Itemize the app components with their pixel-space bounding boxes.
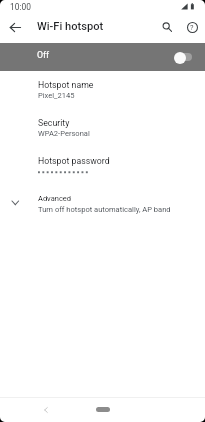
- button[interactable]: Hotspot password: [0, 150, 205, 181]
- staticText: Wi-Fi hotspot: [37, 20, 104, 33]
- staticText: 10:00: [10, 2, 31, 12]
- button[interactable]: Advanced: [0, 188, 205, 219]
- staticText: Security: [38, 118, 70, 128]
- staticText: Turn off hotspot automatically, AP band: [38, 205, 171, 214]
- button[interactable]: Off: [0, 43, 205, 71]
- button[interactable]: Back: [4, 16, 26, 38]
- staticText: Off: [37, 50, 50, 60]
- staticText: Hotspot password: [38, 156, 110, 166]
- button[interactable]: Home: [96, 407, 110, 412]
- button[interactable]: Hotspot name: [0, 74, 205, 105]
- staticText: Pixel_2145: [38, 91, 75, 100]
- button[interactable]: Security: [0, 112, 205, 143]
- button[interactable]: Search: [156, 16, 178, 38]
- button[interactable]: Help: [181, 16, 203, 38]
- staticText: Advanced: [38, 194, 72, 203]
- staticText: ?: [190, 23, 194, 32]
- staticText: WPA2-Personal: [38, 129, 90, 138]
- button[interactable]: Back: [36, 400, 55, 419]
- staticText: Hotspot name: [38, 80, 94, 90]
